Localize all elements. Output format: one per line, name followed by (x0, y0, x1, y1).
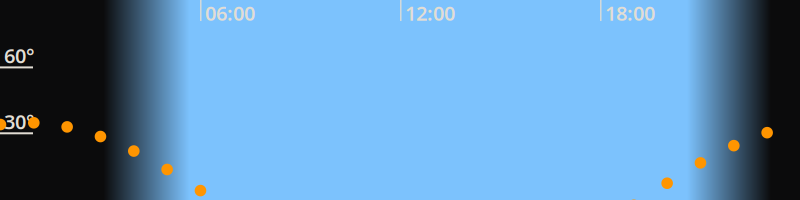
staticText: 30° (4, 108, 35, 135)
staticText: 12:00 (405, 0, 455, 26)
staticText: 60° (4, 42, 35, 69)
staticText: 18:00 (605, 0, 655, 26)
staticText: 06:00 (205, 0, 255, 26)
